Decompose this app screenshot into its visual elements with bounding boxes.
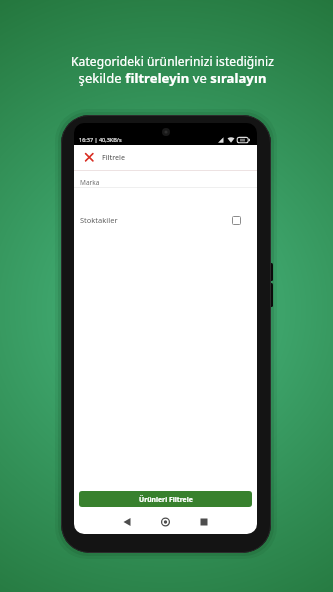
button[interactable]: Stoktakiler: [74, 214, 257, 226]
button[interactable]: Ürünleri Filtrele: [79, 491, 252, 507]
staticText: Kategorideki ürünlerinizi istediğiniz: [12, 53, 333, 69]
button[interactable]: [196, 507, 257, 534]
staticText: Stoktakiler: [80, 215, 118, 225]
button[interactable]: [85, 153, 94, 162]
staticText: 16:37 | 40,3KB/s: [79, 136, 122, 143]
button[interactable]: [74, 507, 135, 534]
staticText: Filtrele: [102, 153, 125, 163]
button[interactable]: [135, 507, 196, 534]
button[interactable]: Filtrele: [74, 145, 257, 170]
staticText: şekilde filtreleyin ve sıralayın: [12, 69, 333, 87]
staticText: Ürünleri Filtrele: [139, 495, 193, 504]
button[interactable]: Marka: [74, 171, 257, 187]
staticText: Marka: [80, 178, 100, 187]
button[interactable]: [232, 216, 241, 225]
